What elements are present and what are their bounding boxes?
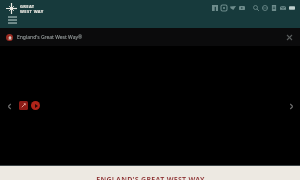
button[interactable]: Newsletter <box>278 3 287 12</box>
button[interactable]: Expand fullscreen <box>19 101 28 110</box>
button[interactable]: Play video <box>31 101 40 110</box>
button[interactable]: Facebook <box>210 3 219 12</box>
button[interactable]: England's Great West Way® <box>6 34 83 41</box>
button[interactable]: Next slide <box>285 100 297 112</box>
button[interactable]: Brochure <box>269 3 278 12</box>
button[interactable]: Twitter <box>228 3 237 12</box>
staticText: England's Great West Way® <box>17 34 83 41</box>
button[interactable]: Menu <box>287 3 296 12</box>
button[interactable]: YouTube <box>237 3 246 12</box>
button[interactable]: Search <box>251 3 260 12</box>
button[interactable]: Instagram <box>219 3 228 12</box>
button[interactable]: GREAT <box>6 3 44 14</box>
button[interactable]: Close banner <box>284 32 294 42</box>
staticText: WEST WAY <box>20 9 44 14</box>
button[interactable]: Language <box>260 3 269 12</box>
staticText: GREAT <box>20 4 35 9</box>
button[interactable]: Open navigation menu <box>6 14 18 26</box>
button[interactable]: Previous slide <box>3 100 15 112</box>
staticText: ENGLAND'S GREAT WEST WAY <box>96 175 205 180</box>
